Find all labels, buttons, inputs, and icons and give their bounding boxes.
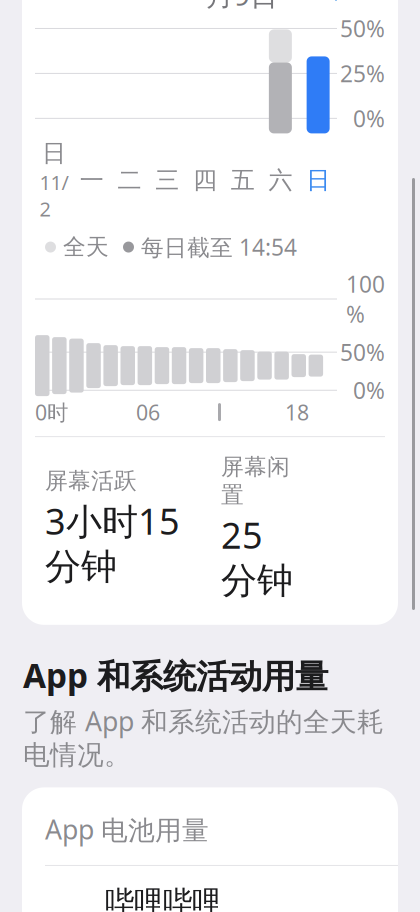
button[interactable]: bilibili <box>22 866 398 912</box>
staticText: 25分钟 <box>221 511 293 603</box>
staticText: 五 <box>231 165 255 195</box>
staticText: 全天 <box>63 233 109 261</box>
staticText: 了解 App 和系统活动的全天耗电情况。 <box>23 703 384 771</box>
staticText: 2025年11月9日 <box>206 0 330 13</box>
staticText: 25% <box>340 58 385 88</box>
staticText: 六 <box>268 165 292 195</box>
staticText: 0时 <box>35 398 68 426</box>
staticText: 二 <box>117 165 141 195</box>
staticText: 四 <box>193 165 217 195</box>
staticText: 哔哩哔哩 <box>105 884 221 912</box>
staticText: 屏幕闲置 <box>221 453 290 509</box>
staticText: 三 <box>155 165 179 195</box>
staticText: 0% <box>353 103 385 133</box>
staticText: 一 <box>80 165 104 195</box>
staticText: App 和系统活动用量 <box>23 653 328 697</box>
staticText: 0% <box>353 375 385 405</box>
staticText: 日 <box>306 165 330 195</box>
staticText: 50% <box>340 337 385 367</box>
staticText: 100% <box>346 269 385 329</box>
staticText: 3小时15分钟 <box>45 497 180 589</box>
staticText: 18 <box>285 398 309 426</box>
staticText: App 电池用量 <box>45 811 209 847</box>
staticText: 11/2 <box>39 169 68 222</box>
staticText: 每日截至 14:54 <box>141 232 297 262</box>
staticText: 日 <box>42 138 66 168</box>
staticText: 06 <box>136 398 160 426</box>
staticText: 屏幕活跃 <box>45 467 137 495</box>
staticText: 50% <box>340 13 385 43</box>
